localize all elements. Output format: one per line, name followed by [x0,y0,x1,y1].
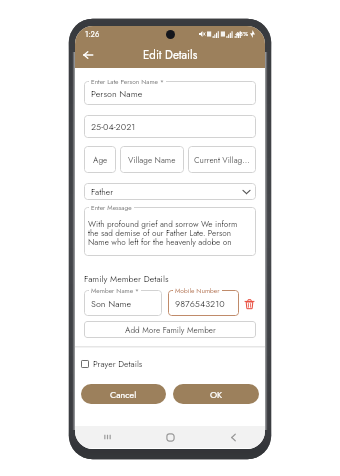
button[interactable]: Delete member [243,297,256,310]
button[interactable]: Current Villag... [188,146,256,173]
button[interactable]: Home [139,426,202,448]
staticText: Current Villag... [194,154,250,166]
staticText: 48% [235,29,249,39]
staticText: Cancel [110,388,137,401]
button[interactable]: Back [202,426,265,448]
staticText: OK [210,388,223,401]
button[interactable]: 9876543210 [168,290,239,316]
staticText: Edit Details [143,47,198,64]
button[interactable]: Cancel [81,384,166,404]
staticText: Add More Family Member [125,324,216,336]
staticText: Age [93,154,108,166]
button[interactable]: Recent apps [75,426,139,448]
staticText: 1:26 [85,29,100,40]
button[interactable]: OK [173,384,259,404]
staticText: Village Name [128,154,176,166]
staticText: Family Member Details [84,273,169,286]
button[interactable]: Back [79,46,97,64]
staticText: Person Name [91,87,143,100]
staticText: 25-04-2021 [91,120,136,133]
staticText: Enter Late Person Name * [91,77,164,87]
button[interactable]: Person Name [84,81,256,105]
button[interactable]: Add More Family Member [84,321,256,338]
button[interactable]: Prayer Details [81,358,265,370]
button[interactable]: Father [84,183,256,200]
button[interactable]: Age [84,146,116,173]
staticText: Father [91,186,114,198]
staticText: With profound grief and sorrow We inform… [88,218,241,248]
staticText: 9876543210 [175,297,225,310]
button[interactable]: 25-04-2021 [84,115,256,138]
button[interactable]: Village Name [120,146,184,173]
staticText: Mobile Number [175,286,220,296]
staticText: Prayer Details [93,358,143,370]
button[interactable]: Son Name [84,290,162,316]
staticText: Member Name * [91,286,139,296]
staticText: Son Name [91,297,132,310]
button[interactable]: With profound grief and sorrow We inform… [84,207,256,256]
staticText: Enter Message [91,203,132,213]
